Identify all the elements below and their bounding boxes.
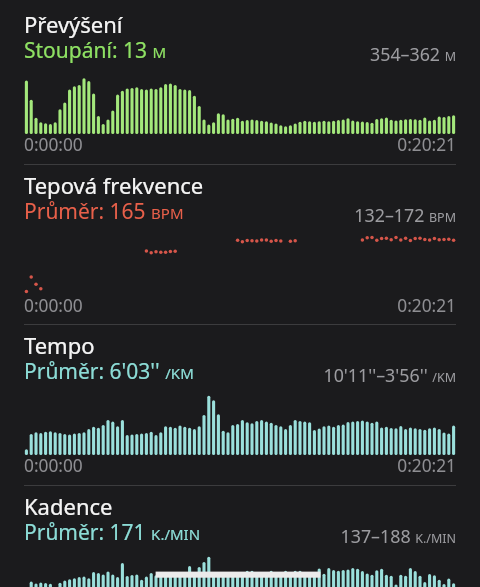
staticText: 0:00:00: [24, 294, 83, 318]
staticText: Stoupání: 13 M: [24, 36, 167, 65]
staticText: 137–188 K./MIN: [0, 524, 456, 548]
staticText: 354–362 M: [0, 42, 456, 66]
staticText: 0:20:21: [0, 294, 456, 318]
staticText: Průměr: 171 K./MIN: [24, 518, 201, 547]
staticText: 0:20:21: [0, 133, 456, 157]
button[interactable]: Kadence: [0, 485, 480, 587]
staticText: Převýšení: [24, 9, 123, 39]
button[interactable]: Tempo: [0, 324, 480, 485]
staticText: 0:00:00: [24, 133, 83, 157]
staticText: 0:00:00: [24, 454, 83, 478]
button[interactable]: Tepová frekvence: [0, 164, 480, 325]
staticText: Průměr: 165 BPM: [24, 197, 184, 226]
staticText: Tempo: [24, 330, 95, 360]
staticText: Tepová frekvence: [24, 170, 204, 200]
staticText: Kadence: [24, 491, 113, 521]
staticText: 0:20:21: [0, 454, 456, 478]
staticText: 10'11''–3'56'' /KM: [0, 363, 456, 387]
staticText: Průměr: 6'03'' /KM: [24, 357, 194, 386]
staticText: 132–172 BPM: [0, 203, 456, 227]
button[interactable]: Převýšení: [0, 3, 480, 164]
